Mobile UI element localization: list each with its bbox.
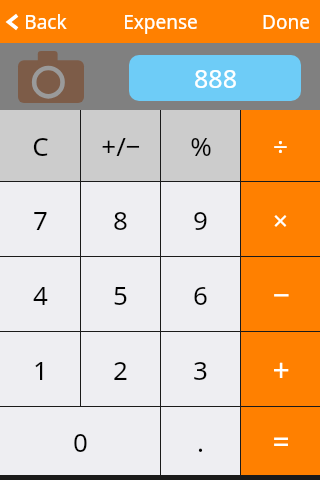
staticText: . [197,424,204,459]
staticText: + [272,349,290,390]
button[interactable]: 1 [0,332,80,406]
button[interactable]: = [241,407,320,475]
button[interactable]: +/− [81,110,160,181]
button[interactable]: 4 [0,257,80,331]
staticText: − [272,274,290,315]
button[interactable]: . [161,407,240,475]
button[interactable]: 2 [81,332,160,406]
staticText: +/− [101,128,141,163]
button[interactable]: 9 [161,182,240,256]
button[interactable]: 7 [0,182,80,256]
button[interactable]: % [161,110,240,181]
button[interactable]: − [241,257,320,331]
button[interactable]: + [241,332,320,406]
button[interactable]: 6 [161,257,240,331]
staticText: 6 [193,277,208,312]
staticText: 1 [33,352,48,387]
staticText: 5 [113,277,128,312]
button[interactable]: Done [262,9,310,35]
staticText: 4 [33,277,48,312]
staticText: C [32,128,49,163]
button[interactable]: 8 [81,182,160,256]
staticText: 8 [113,202,128,237]
button[interactable]: × [241,182,320,256]
staticText: × [273,202,288,237]
button[interactable]: 0 [0,407,160,475]
button[interactable]: Take photo [18,51,84,103]
staticText: Done [262,9,310,35]
button[interactable]: 888 [129,55,301,101]
staticText: 0 [73,424,88,459]
staticText: 3 [193,352,208,387]
staticText: 888 [194,61,237,95]
staticText: Expense [123,9,198,35]
staticText: 7 [33,202,48,237]
staticText: 2 [113,352,128,387]
staticText: % [190,128,212,163]
staticText: ÷ [273,128,288,163]
staticText: 9 [193,202,208,237]
button[interactable]: ÷ [241,110,320,181]
staticText: Back [24,9,67,35]
button[interactable]: Back [6,9,67,35]
button[interactable]: 5 [81,257,160,331]
button[interactable]: 3 [161,332,240,406]
staticText: = [272,421,290,462]
button[interactable]: C [0,110,80,181]
